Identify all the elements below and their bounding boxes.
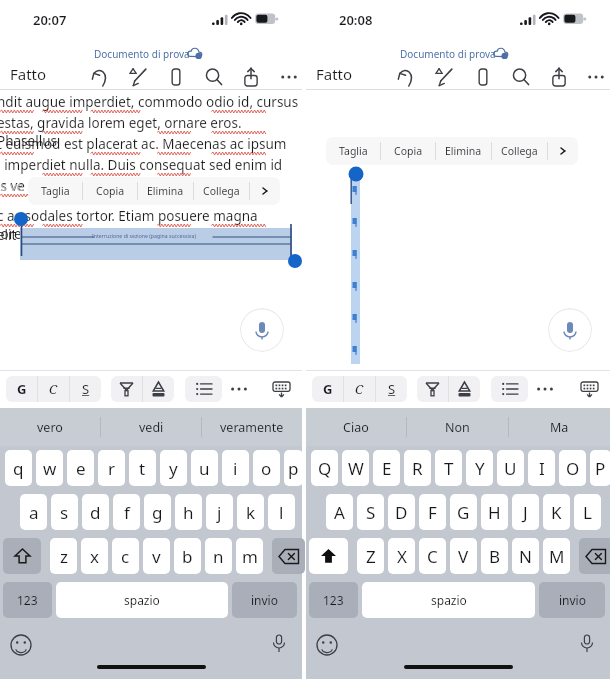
button[interactable]: Dettatura [548,308,592,352]
button[interactable]: L [574,494,601,530]
button[interactable]: Dettatura [240,308,284,352]
button[interactable]: C [344,376,375,402]
button[interactable]: i [222,450,249,486]
button[interactable]: Non [407,408,508,446]
button[interactable]: S [70,376,101,402]
button[interactable]: r [98,450,125,486]
button[interactable]: q [5,450,32,486]
button[interactable]: k [237,494,264,530]
button[interactable]: Ma [509,408,610,446]
button[interactable]: e [67,450,94,486]
button[interactable]: Taglia [326,137,380,165]
button[interactable]: f [113,494,140,530]
button[interactable]: invio [539,582,605,618]
button[interactable]: Q [311,450,338,486]
button[interactable]: Condividi [238,64,264,90]
button[interactable]: Copia [381,137,435,165]
button[interactable]: C [419,538,446,574]
button[interactable]: O [559,450,586,486]
button[interactable]: Layout [163,64,189,90]
button[interactable]: G [312,376,343,402]
button[interactable]: S [376,376,407,402]
button[interactable]: p [284,450,303,486]
button[interactable]: Annulla [88,64,114,90]
button[interactable]: Altre opzioni [226,376,252,402]
button[interactable]: Maiuscole [3,538,41,574]
button[interactable]: D [388,494,415,530]
button[interactable]: vero [0,408,100,446]
button[interactable]: T [435,450,462,486]
button[interactable]: l [268,494,295,530]
button[interactable]: E [373,450,400,486]
button[interactable]: Revisione [126,64,152,90]
button[interactable]: Cerca [508,64,534,90]
button[interactable]: Altro [583,64,609,90]
button[interactable]: X [388,538,415,574]
button[interactable]: W [342,450,369,486]
button[interactable]: 123 [3,582,52,618]
button[interactable]: Ciao [306,408,406,446]
button[interactable]: t [129,450,156,486]
button[interactable]: vedi [101,408,201,446]
button[interactable]: Y [466,450,493,486]
button[interactable]: g [144,494,171,530]
button[interactable]: invio [232,582,297,618]
button[interactable]: j [206,494,233,530]
button[interactable]: Layout [470,64,496,90]
button[interactable]: c [112,538,139,574]
button[interactable]: w [36,450,63,486]
button[interactable]: Maiuscole [309,538,348,574]
button[interactable]: U [497,450,524,486]
button[interactable]: y [160,450,187,486]
button[interactable]: V [450,538,477,574]
button[interactable]: Colore testo [449,376,480,402]
button[interactable]: v [143,538,170,574]
button[interactable]: Elimina [138,177,193,205]
button[interactable]: N [512,538,539,574]
button[interactable]: Dettatura [574,631,600,657]
button[interactable]: Evidenziatore [111,376,142,402]
button[interactable]: Condividi [546,64,572,90]
button[interactable]: Altre azioni [250,177,280,205]
button[interactable]: 123 [309,582,358,618]
button[interactable]: Collega [492,137,547,165]
button[interactable]: Elenco [185,376,222,402]
button[interactable]: K [543,494,570,530]
button[interactable]: A [326,494,353,530]
button[interactable]: Cerca [201,64,227,90]
button[interactable]: P [590,450,610,486]
button[interactable]: R [404,450,431,486]
button[interactable]: Altro [276,64,302,90]
button[interactable]: Altre azioni [548,137,578,165]
button[interactable]: C [38,376,69,402]
button[interactable]: Altre opzioni [532,376,558,402]
button[interactable]: Emoji [314,632,340,658]
button[interactable]: H [481,494,508,530]
button[interactable]: o [253,450,280,486]
button[interactable]: Annulla [394,64,420,90]
button[interactable]: spazio [56,582,228,618]
button[interactable]: m [236,538,263,574]
button[interactable]: M [543,538,570,574]
button[interactable]: Dettatura [266,631,292,657]
button[interactable]: B [481,538,508,574]
button[interactable]: Fatto [316,64,353,84]
button[interactable]: J [512,494,539,530]
button[interactable]: F [419,494,446,530]
button[interactable]: G [450,494,477,530]
button[interactable]: Evidenziatore [417,376,448,402]
button[interactable]: I [528,450,555,486]
button[interactable]: Backspace [579,538,610,574]
button[interactable]: z [50,538,77,574]
button[interactable]: x [81,538,108,574]
button[interactable]: a [20,494,47,530]
button[interactable]: Z [357,538,384,574]
button[interactable]: Colore testo [143,376,174,402]
button[interactable]: Fatto [10,64,47,84]
button[interactable]: u [191,450,218,486]
button[interactable]: h [175,494,202,530]
button[interactable]: Revisione [432,64,458,90]
button[interactable]: spazio [362,582,535,618]
button[interactable]: n [205,538,232,574]
button[interactable]: d [82,494,109,530]
